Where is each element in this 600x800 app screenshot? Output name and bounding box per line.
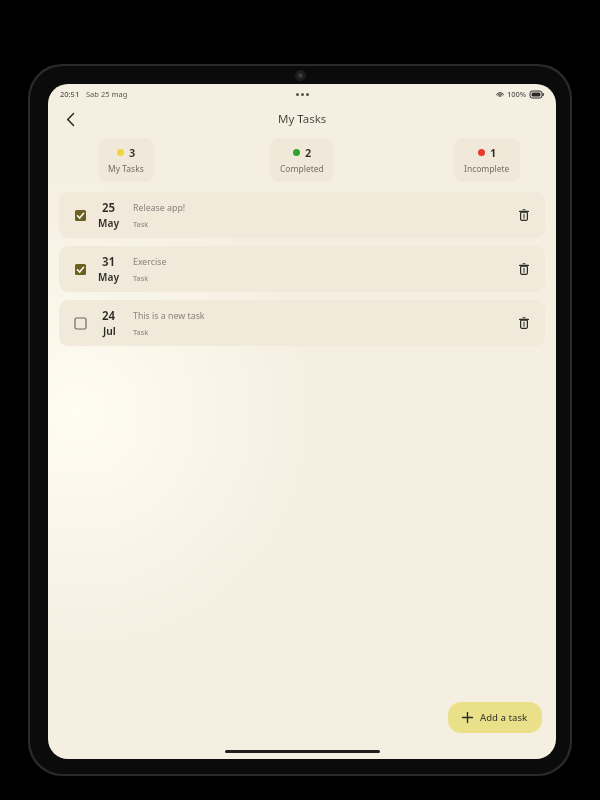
staticText: 20:51	[60, 89, 80, 99]
staticText: Sab 25 mag	[86, 89, 128, 99]
button[interactable]: Mark complete	[69, 312, 91, 334]
staticText: 2	[305, 145, 312, 160]
staticText: My Tasks	[108, 163, 144, 175]
staticText: Exercise	[133, 256, 167, 268]
button[interactable]: 3	[98, 138, 154, 182]
staticText: Incomplete	[464, 163, 510, 175]
staticText: Add a task	[480, 711, 528, 724]
staticText: 25	[102, 200, 116, 216]
staticText: 3	[129, 145, 136, 160]
staticText: Task	[133, 219, 149, 229]
button[interactable]: Add a task	[448, 702, 542, 733]
button[interactable]: Completed	[69, 258, 91, 280]
staticText: 24	[102, 308, 116, 324]
button[interactable]: 1	[454, 138, 520, 182]
staticText: My Tasks	[278, 111, 327, 127]
button[interactable]: Delete task	[511, 310, 537, 336]
staticText: May	[98, 216, 120, 230]
staticText: Jul	[103, 324, 116, 338]
button[interactable]: Completed	[59, 192, 545, 238]
staticText: Release app!	[133, 202, 186, 214]
staticText: May	[98, 270, 120, 284]
staticText: 100%	[507, 89, 527, 99]
button[interactable]: Delete task	[511, 202, 537, 228]
button[interactable]: 2	[270, 138, 334, 182]
button[interactable]: Completed	[69, 204, 91, 226]
button[interactable]: Delete task	[511, 256, 537, 282]
button[interactable]: Mark complete	[59, 300, 545, 346]
staticText: Completed	[280, 163, 324, 175]
staticText: This is a new task	[133, 310, 205, 322]
button[interactable]: Back	[56, 105, 84, 133]
staticText: Task	[133, 273, 149, 283]
staticText: 1	[490, 145, 497, 160]
staticText: Task	[133, 327, 149, 337]
staticText: 31	[102, 254, 116, 270]
button[interactable]: Completed	[59, 246, 545, 292]
